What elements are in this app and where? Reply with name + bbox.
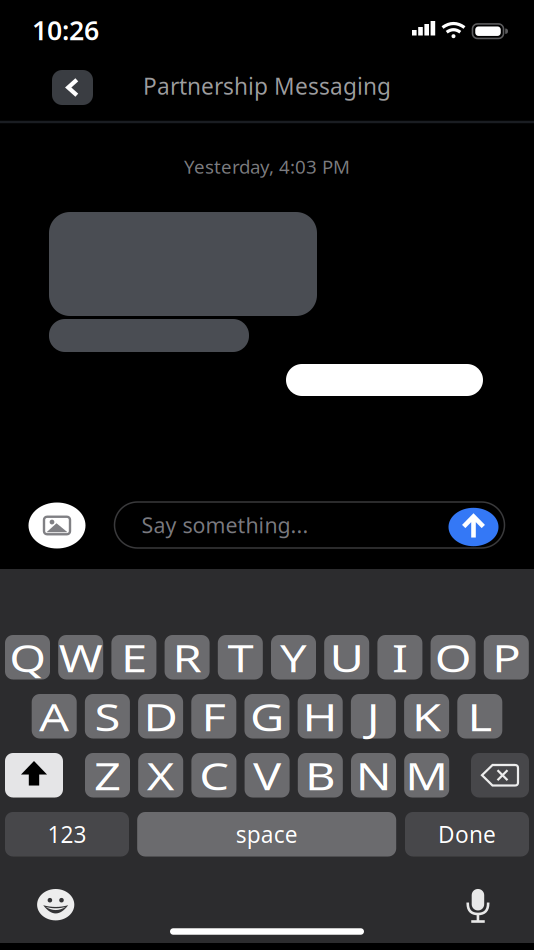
staticText: D	[147, 691, 175, 742]
button[interactable]: space	[137, 812, 396, 856]
staticText: Z	[96, 750, 118, 801]
button[interactable]: P	[484, 635, 529, 679]
staticText: C	[202, 750, 226, 801]
button[interactable]: L	[457, 694, 502, 738]
button[interactable]: Say something	[114, 502, 504, 548]
button[interactable]: Z	[85, 753, 130, 797]
button[interactable]: J	[351, 694, 396, 738]
staticText: R	[175, 632, 199, 683]
button[interactable]: 123	[5, 812, 129, 856]
button[interactable]: R	[165, 635, 210, 679]
staticText: 10:26	[32, 12, 99, 48]
staticText: V	[256, 750, 279, 801]
staticText: S	[97, 691, 118, 742]
staticText: U	[333, 632, 361, 683]
button[interactable]: F	[191, 694, 236, 738]
staticText: W	[63, 632, 99, 683]
button[interactable]: H	[298, 694, 343, 738]
staticText: space	[236, 819, 298, 849]
button[interactable]: B	[298, 753, 343, 797]
button[interactable]: Emoji	[37, 889, 75, 921]
button[interactable]: E	[111, 635, 156, 679]
staticText: A	[42, 691, 67, 742]
staticText: Q	[12, 632, 42, 683]
button[interactable]: W	[58, 635, 103, 679]
staticText: O	[438, 632, 468, 683]
button[interactable]: M	[404, 753, 449, 797]
button[interactable]: S	[85, 694, 130, 738]
staticText: H	[306, 691, 335, 742]
button[interactable]: G	[244, 694, 289, 738]
staticText: Y	[282, 632, 304, 683]
button[interactable]: C	[191, 753, 236, 797]
button[interactable]: Dictate	[461, 887, 495, 923]
button[interactable]: U	[324, 635, 369, 679]
staticText: P	[495, 632, 518, 683]
button[interactable]: Done	[405, 812, 529, 856]
button[interactable]: K	[404, 694, 449, 738]
staticText: E	[123, 632, 144, 683]
staticText: F	[204, 691, 224, 742]
button[interactable]: Shift	[5, 753, 63, 797]
staticText: M	[409, 750, 444, 801]
button[interactable]: Attach photo	[28, 502, 85, 548]
button[interactable]: I	[377, 635, 422, 679]
staticText: B	[308, 750, 333, 801]
button[interactable]: Y	[271, 635, 316, 679]
button[interactable]: Send	[448, 507, 498, 546]
staticText: 123	[47, 819, 86, 849]
button[interactable]: X	[138, 753, 183, 797]
staticText: Yesterday, 4:03 PM	[184, 154, 350, 179]
button[interactable]: N	[351, 753, 396, 797]
staticText: G	[253, 691, 281, 742]
button[interactable]: T	[218, 635, 263, 679]
button[interactable]: V	[245, 753, 290, 797]
staticText: Say something...	[141, 511, 308, 539]
button[interactable]: Delete	[471, 753, 529, 797]
staticText: T	[230, 632, 251, 683]
staticText: N	[359, 750, 388, 801]
button[interactable]: Back	[52, 70, 93, 105]
staticText: X	[149, 750, 172, 801]
staticText: I	[393, 632, 406, 683]
button[interactable]: A	[32, 694, 77, 738]
staticText: Done	[438, 819, 496, 849]
staticText: K	[415, 691, 439, 742]
staticText: L	[470, 691, 490, 742]
button[interactable]: D	[138, 694, 183, 738]
staticText: J	[368, 691, 379, 742]
button[interactable]: O	[431, 635, 476, 679]
button[interactable]: Q	[5, 635, 50, 679]
staticText: Partnership Messaging	[143, 71, 391, 101]
